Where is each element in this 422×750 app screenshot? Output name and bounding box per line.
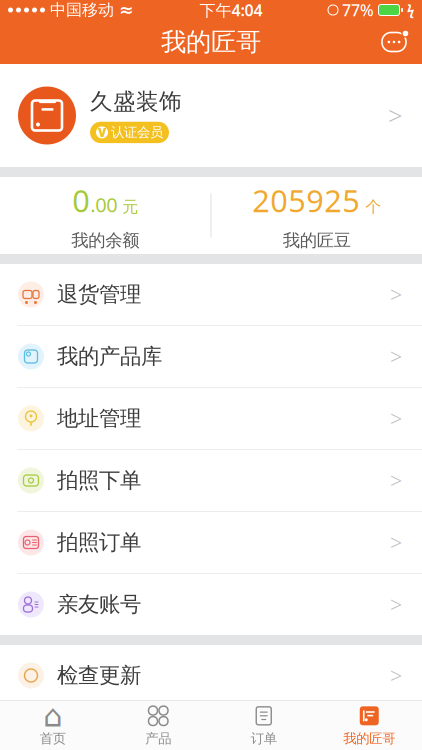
staticText: 地址管理	[57, 405, 141, 432]
staticText: 我的匠豆	[283, 230, 351, 251]
staticText: ϟ	[407, 1, 414, 19]
button[interactable]: 拍照订单	[0, 512, 422, 573]
staticText: ≈	[119, 0, 134, 20]
staticText: 77%	[342, 0, 374, 21]
staticText: 产品	[145, 730, 171, 747]
button[interactable]: 退货管理	[0, 264, 422, 325]
button[interactable]: 0	[0, 177, 210, 254]
button[interactable]: ▸	[0, 645, 422, 706]
staticText: 我的余额	[71, 230, 139, 251]
staticText: 个	[360, 197, 381, 217]
staticText: 元	[117, 197, 138, 217]
staticText: 认证会员	[111, 124, 163, 141]
staticText: >	[390, 466, 402, 495]
staticText: 我的匠哥	[161, 26, 261, 57]
button[interactable]: 拍照下单	[0, 450, 422, 511]
staticText: ⌂	[43, 698, 62, 733]
button[interactable]: 205925	[211, 177, 422, 254]
staticText: 订单	[251, 730, 277, 747]
staticText: 亲友账号	[57, 591, 141, 618]
staticText: >	[390, 528, 402, 557]
staticText: >	[390, 404, 402, 433]
staticText: >	[390, 661, 402, 690]
button[interactable]: 亲友账号	[0, 574, 422, 635]
staticText: V	[98, 124, 106, 140]
button[interactable]: 我的产品库	[0, 326, 422, 387]
button[interactable]: 产品	[105, 701, 211, 750]
staticText: 0	[72, 180, 90, 221]
staticText: >	[390, 590, 402, 619]
staticText: 拍照订单	[57, 529, 141, 556]
staticText: .00	[90, 191, 117, 218]
staticText: 首页	[40, 730, 66, 747]
staticText: 我的产品库	[57, 343, 162, 370]
button[interactable]: 久盛装饰	[0, 64, 422, 167]
staticText: 检查更新	[57, 662, 141, 689]
staticText: >	[390, 280, 402, 309]
button[interactable]: 我的匠哥	[316, 701, 422, 750]
button[interactable]: ⌂	[0, 701, 105, 750]
button[interactable]: 地址管理	[0, 388, 422, 449]
staticText: 久盛装饰	[90, 88, 182, 116]
staticText: >	[388, 99, 402, 132]
button[interactable]: 订单	[211, 701, 316, 750]
staticText: 退货管理	[57, 281, 141, 308]
staticText: 205925	[252, 180, 360, 221]
staticText: 下午4:04	[199, 0, 262, 21]
button[interactable]: 消息	[372, 20, 416, 64]
staticText: 拍照下单	[57, 467, 141, 494]
staticText: 我的匠哥	[343, 730, 395, 747]
staticText: >	[390, 342, 402, 371]
staticText: 中国移动	[50, 0, 114, 20]
